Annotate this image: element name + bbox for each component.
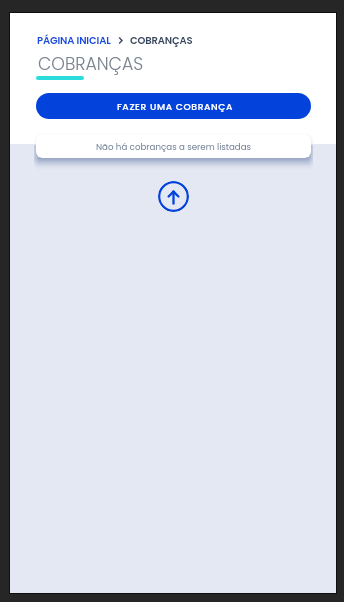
button[interactable]: Não há cobranças a serem listadas <box>36 134 311 158</box>
staticText: COBRANÇAS <box>38 52 144 76</box>
staticText: COBRANÇAS <box>130 33 193 47</box>
button[interactable]: Voltar ao topo <box>158 181 189 212</box>
button[interactable]: FAZER UMA COBRANÇA <box>36 93 311 119</box>
staticText: FAZER UMA COBRANÇA <box>117 100 234 113</box>
staticText: Não há cobranças a serem listadas <box>96 141 252 153</box>
button[interactable]: PÁGINA INICIAL <box>37 33 111 47</box>
